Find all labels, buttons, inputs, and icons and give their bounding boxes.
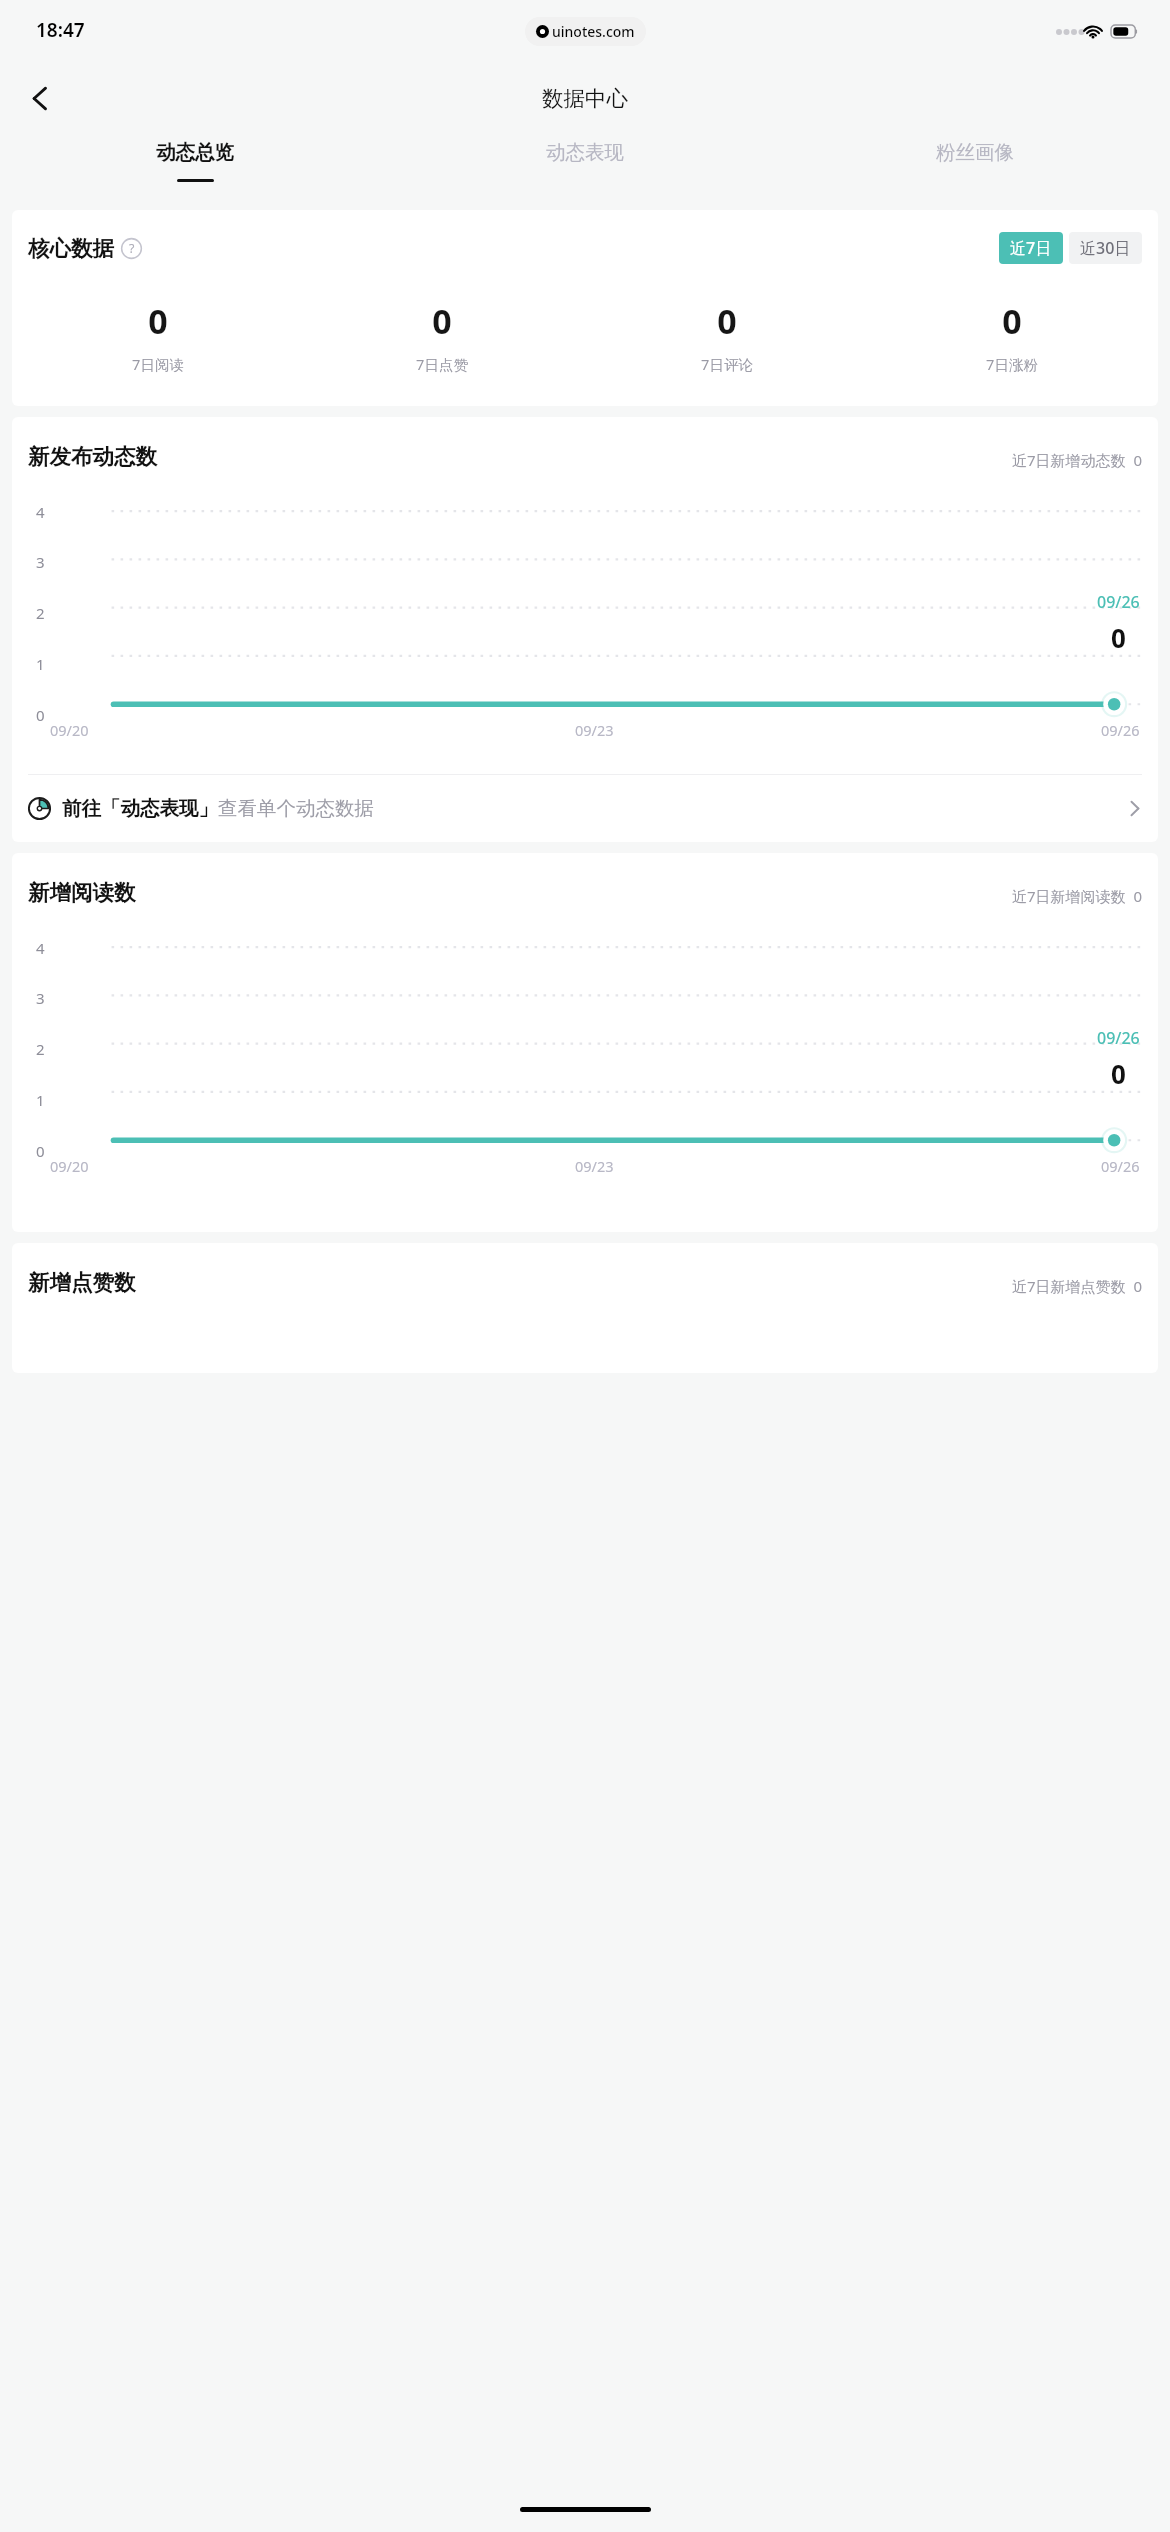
button[interactable]: 动态总览 bbox=[0, 134, 390, 198]
staticText: 近7日新增点赞数 0 bbox=[1012, 1276, 1142, 1296]
button[interactable]: 返回 bbox=[12, 70, 68, 126]
staticText: 查看单个动态数据 bbox=[218, 796, 374, 821]
staticText: 3 bbox=[36, 552, 45, 572]
staticText: 粉丝画像 bbox=[936, 140, 1014, 165]
staticText: 新增阅读数 bbox=[28, 879, 136, 906]
button[interactable]: 粉丝画像 bbox=[780, 134, 1170, 198]
staticText: uinotes.com bbox=[552, 22, 635, 41]
staticText: 4 bbox=[36, 502, 45, 522]
staticText: ? bbox=[129, 240, 135, 257]
staticText: 2 bbox=[36, 1039, 45, 1059]
staticText: 0 bbox=[148, 298, 168, 344]
staticText: 0 bbox=[1002, 298, 1022, 344]
button[interactable]: 近30日 bbox=[1069, 232, 1142, 264]
staticText: 7日阅读 bbox=[132, 354, 184, 374]
button[interactable]: 近7日 bbox=[999, 232, 1063, 264]
staticText: 0 bbox=[36, 705, 45, 725]
staticText: 1 bbox=[36, 1090, 45, 1110]
staticText: 09/26 bbox=[1097, 1027, 1140, 1049]
staticText: 3 bbox=[36, 988, 45, 1008]
staticText: 近7日新增动态数 0 bbox=[1012, 450, 1142, 470]
staticText: 0 bbox=[717, 298, 737, 344]
staticText: 09/26 bbox=[1101, 1156, 1140, 1176]
button[interactable]: 前往「动态表现」 bbox=[12, 775, 1158, 842]
staticText: 0 bbox=[36, 1141, 45, 1161]
staticText: 动态总览 bbox=[156, 140, 234, 165]
staticText: 0 bbox=[432, 298, 452, 344]
staticText: 7日涨粉 bbox=[986, 354, 1038, 374]
staticText: 09/20 bbox=[50, 1156, 89, 1176]
staticText: 数据中心 bbox=[542, 85, 628, 112]
staticText: 09/23 bbox=[575, 720, 614, 740]
staticText: 09/26 bbox=[1097, 591, 1140, 613]
staticText: 7日评论 bbox=[701, 354, 753, 374]
staticText: 09/20 bbox=[50, 720, 89, 740]
staticText: 09/26 bbox=[1101, 720, 1140, 740]
staticText: 新发布动态数 bbox=[28, 443, 157, 470]
staticText: 1 bbox=[36, 654, 45, 674]
staticText: 0 bbox=[1111, 1056, 1126, 1091]
staticText: 新增点赞数 bbox=[28, 1269, 136, 1296]
staticText: 0 bbox=[1111, 620, 1126, 655]
button[interactable]: 说明 bbox=[121, 238, 142, 259]
staticText: 近7日 bbox=[1010, 237, 1052, 259]
staticText: 2 bbox=[36, 603, 45, 623]
staticText: 核心数据 bbox=[28, 235, 114, 262]
staticText: 09/23 bbox=[575, 1156, 614, 1176]
staticText: 近30日 bbox=[1080, 237, 1131, 259]
staticText: 前往「动态表现」 bbox=[62, 796, 218, 821]
staticText: 18:47 bbox=[36, 17, 85, 43]
staticText: 近7日新增阅读数 0 bbox=[1012, 886, 1142, 906]
staticText: 动态表现 bbox=[546, 140, 624, 165]
staticText: 7日点赞 bbox=[416, 354, 468, 374]
staticText: 4 bbox=[36, 938, 45, 958]
button[interactable]: 动态表现 bbox=[390, 134, 780, 198]
